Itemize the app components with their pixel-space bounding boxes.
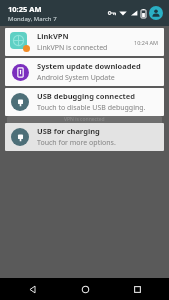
button[interactable]: Recent apps [117, 278, 157, 300]
staticText: 10:25 AM [8, 4, 42, 14]
staticText: Touch to disable USB debugging. [37, 103, 146, 113]
button[interactable]: Back [12, 278, 52, 300]
staticText: LinkVPN is connected [37, 43, 108, 53]
staticText: Monday, March 7 [8, 15, 57, 23]
staticText: LinkVPN [37, 31, 69, 41]
button[interactable]: Home [65, 278, 105, 300]
button[interactable]: USB debugging connected [5, 88, 164, 116]
staticText: VPN is connected [64, 116, 105, 123]
staticText: 10:24 AM [134, 39, 158, 46]
button[interactable]: USB for charging [5, 123, 164, 151]
staticText: System update downloaded [37, 61, 141, 71]
button[interactable]: System update downloaded [5, 58, 164, 86]
staticText: USB debugging connected [37, 91, 135, 101]
staticText: Android System Update [37, 73, 115, 83]
button[interactable]: LinkVPN [5, 28, 164, 56]
button[interactable]: User profile [149, 6, 163, 20]
staticText: USB for charging [37, 126, 100, 136]
staticText: Touch for more options. [37, 138, 116, 148]
